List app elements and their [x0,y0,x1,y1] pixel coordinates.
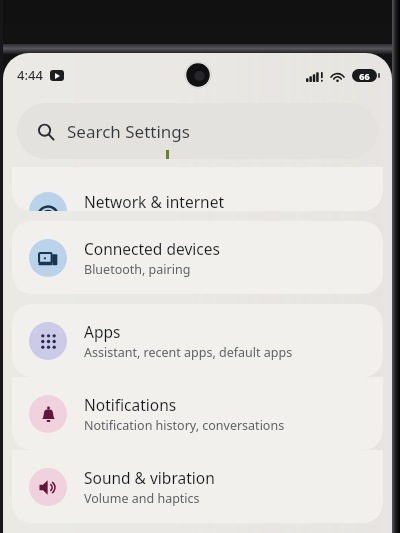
button[interactable]: Search Settings [17,103,378,159]
button[interactable]: Network & internet [12,167,383,211]
staticText: Search Settings [67,120,190,143]
button[interactable]: Notifications [12,377,383,450]
staticText: Sound & vibration [84,467,215,488]
staticText: Volume and haptics [84,490,200,507]
staticText: Connected devices [84,238,220,259]
button[interactable]: Apps [12,304,383,377]
button[interactable]: Connected devices [12,221,383,294]
staticText: Assistant, recent apps, default apps [84,344,293,361]
staticText: Notification history, conversations [84,417,285,434]
staticText: Apps [84,321,121,342]
staticText: 4:44 [17,66,43,84]
staticText: Bluetooth, pairing [84,261,191,278]
staticText: Network & internet [84,191,224,211]
staticText: Notifications [84,394,177,415]
staticText: 66 [359,70,370,82]
button[interactable]: Sound & vibration [12,450,383,523]
